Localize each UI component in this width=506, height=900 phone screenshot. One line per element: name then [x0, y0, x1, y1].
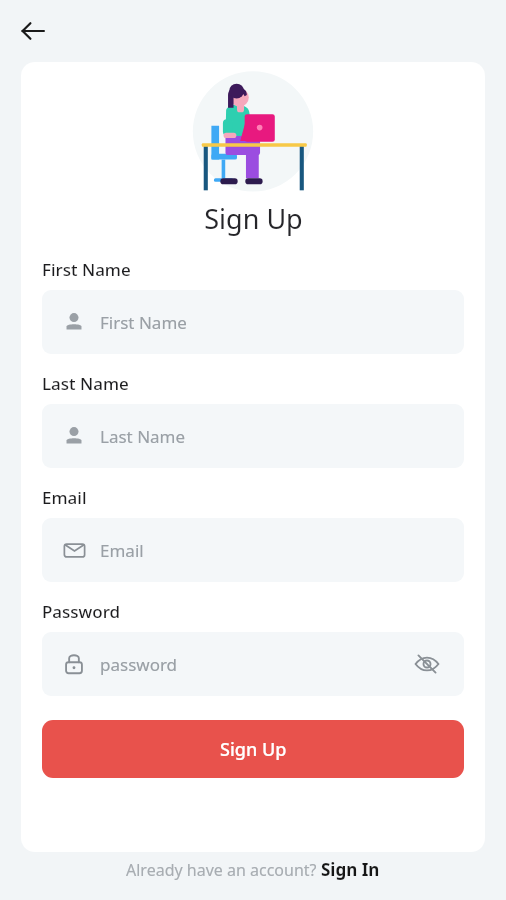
staticText: Sign In: [321, 858, 380, 881]
staticText: Last Name: [42, 372, 129, 395]
staticText: Email: [42, 486, 87, 509]
button[interactable]: password: [42, 632, 464, 696]
staticText: Email: [100, 539, 144, 562]
button[interactable]: Show password: [410, 647, 444, 681]
staticText: Sign Up: [204, 200, 303, 237]
staticText: First Name: [100, 311, 187, 334]
button[interactable]: Already have an account?: [126, 858, 380, 881]
staticText: Password: [42, 600, 121, 623]
button[interactable]: Back: [10, 8, 56, 54]
staticText: password: [100, 653, 178, 676]
staticText: Last Name: [100, 425, 186, 448]
staticText: Sign Up: [220, 737, 287, 762]
button[interactable]: Sign Up: [42, 720, 464, 778]
button[interactable]: First Name: [42, 290, 464, 354]
button[interactable]: Email: [42, 518, 464, 582]
staticText: Already have an account?: [126, 859, 321, 881]
button[interactable]: Last Name: [42, 404, 464, 468]
staticText: First Name: [42, 258, 131, 281]
